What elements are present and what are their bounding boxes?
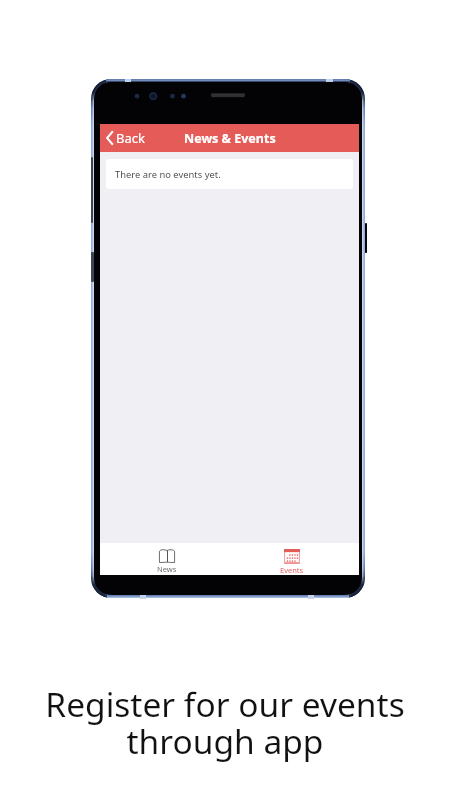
staticText: Events [280,565,304,575]
staticText: News [157,564,177,574]
button[interactable]: There are no events yet. [106,159,353,189]
button[interactable]: Events [229,543,354,575]
staticText: There are no events yet. [115,168,221,181]
staticText: Back [116,129,145,147]
staticText: News & Events [184,130,276,147]
staticText: Register for our events through app [45,681,405,764]
button[interactable]: Back [100,124,153,152]
button[interactable]: News [105,543,229,575]
